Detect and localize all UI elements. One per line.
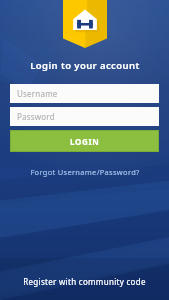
staticText: Login to your account xyxy=(30,59,140,72)
staticText: Forgot Username/Password? xyxy=(30,167,140,177)
button[interactable]: LOGIN xyxy=(11,131,158,151)
button[interactable]: Username xyxy=(10,84,159,103)
other: App logo xyxy=(63,0,107,48)
button[interactable]: Password xyxy=(10,107,159,126)
staticText: Register with community code xyxy=(23,276,146,287)
staticText: LOGIN xyxy=(70,136,100,147)
staticText: Username xyxy=(17,88,58,99)
button[interactable]: Register with community code xyxy=(13,273,156,290)
button[interactable]: Forgot Username/Password? xyxy=(22,164,148,180)
staticText: Password xyxy=(17,111,55,122)
